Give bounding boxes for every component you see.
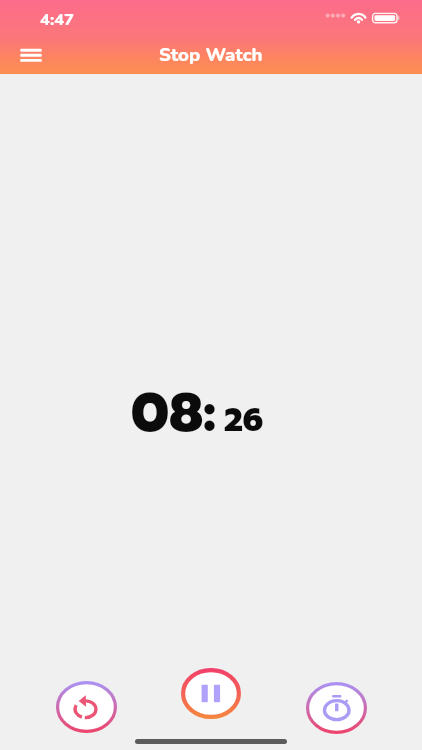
staticText: 4:47	[40, 8, 74, 31]
button[interactable]: Lap	[306, 682, 367, 734]
staticText: Stop Watch	[159, 42, 263, 67]
button[interactable]: Open navigation menu	[5, 40, 47, 71]
button[interactable]: Pause	[181, 668, 241, 719]
button[interactable]: Reset	[56, 681, 117, 733]
staticText: 08:	[131, 372, 216, 454]
staticText: 26	[224, 396, 264, 444]
